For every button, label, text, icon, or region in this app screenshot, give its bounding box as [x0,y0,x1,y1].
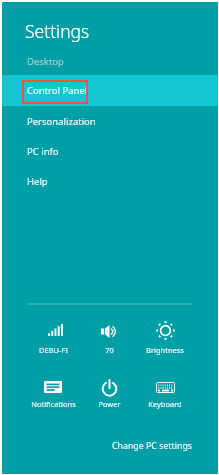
staticText: 70 [105,345,114,355]
button[interactable]: Personalization [2,106,218,137]
other: Network [48,324,63,336]
button[interactable]: Desktop [2,46,218,77]
other: Keyboard [156,382,175,393]
button[interactable]: Notifications [25,371,81,403]
button[interactable]: PC info [2,136,218,167]
staticText: PC info [27,145,59,158]
button[interactable]: Keyboard [137,371,193,403]
button[interactable]: Power [81,371,137,403]
staticText: Power [98,399,121,409]
staticText: Control Panel [27,84,88,97]
staticText: Notifications [31,399,76,409]
staticText: Personalization [27,115,96,128]
other: Power [101,379,118,396]
button[interactable]: Change PC settings [2,438,218,454]
button[interactable]: Brightness [137,314,193,346]
button[interactable]: Help [2,166,218,197]
button[interactable]: Control Panel [2,75,218,106]
button[interactable]: Network [27,314,83,346]
staticText: DEBU-FI [39,345,68,355]
staticText: Change PC settings [112,440,193,452]
button[interactable]: Volume [81,315,137,347]
staticText: Brightness [146,345,184,355]
other: Notifications [44,381,62,393]
staticText: Help [27,175,48,188]
other: Volume [101,325,118,338]
staticText: Desktop [27,55,64,68]
other: Brightness [156,321,175,340]
staticText: Keyboard [148,399,182,409]
staticText: Settings [25,19,90,43]
